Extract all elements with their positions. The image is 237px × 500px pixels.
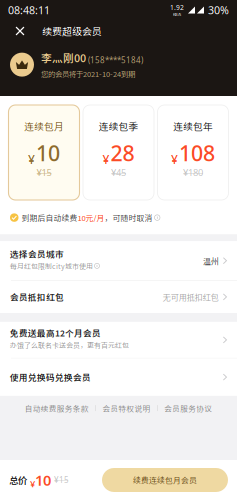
staticText: 08:48:11 (8, 3, 50, 17)
staticText: ，可随时取消 (104, 212, 152, 223)
button[interactable]: 连续包月 (8, 105, 79, 200)
staticText: KB/S (173, 12, 181, 17)
staticText: 免费送最高12个月会员 (10, 327, 101, 339)
staticText: 总价 (9, 473, 27, 487)
staticText: 到期后自动续费 (21, 212, 77, 223)
staticText: 10 (36, 139, 60, 167)
staticText: 选择会员城市 (10, 247, 64, 260)
staticText: ¥15 (54, 475, 69, 485)
staticText: 1.92 (170, 3, 184, 12)
staticText: 10元/月 (77, 212, 104, 223)
staticText: 续费超级会员 (42, 24, 102, 38)
button[interactable]: 连续包季 (83, 105, 154, 200)
button[interactable]: 会员特权说明 (102, 403, 150, 414)
staticText: 连续包月 (24, 119, 64, 133)
staticText: ¥ (102, 151, 109, 167)
button[interactable]: 续费连续包月会员 (102, 468, 228, 492)
button[interactable]: 选择会员城市 (0, 241, 237, 280)
staticText: 李灬刚00 (41, 50, 86, 65)
staticText: 您的会员将于2021-10-24到期 (41, 68, 135, 79)
button[interactable]: 自动续费服务条款 (25, 403, 89, 414)
staticText: 无可用抵扣红包 (163, 291, 219, 303)
staticText: 108 (179, 139, 215, 167)
staticText: ¥ (30, 477, 35, 490)
button[interactable]: Close (8, 20, 32, 42)
button[interactable]: 免费送最高12个月会员 (0, 322, 237, 358)
staticText: 会员特权说明 (102, 403, 150, 414)
staticText: 10 (35, 470, 51, 490)
button[interactable]: 会员服务协议 (164, 403, 212, 414)
staticText: 会员抵扣红包 (10, 291, 64, 303)
button[interactable]: 连续包年 (157, 105, 228, 200)
staticText: 每月红包限制city城市使用 (10, 261, 93, 271)
staticText: ¥15 (36, 166, 51, 179)
staticText: 办饿了么联名卡送会员，更有百元红包 (10, 340, 129, 350)
button[interactable]: 使用兑换码兑换会员 (0, 359, 237, 396)
staticText: 连续包年 (173, 119, 213, 133)
staticText: 连续包季 (98, 119, 138, 133)
staticText: 28 (110, 139, 134, 167)
staticText: 会员服务协议 (164, 403, 212, 414)
staticText: ¥ (28, 151, 35, 167)
staticText: 自动续费服务条款 (25, 403, 89, 414)
button[interactable]: 会员抵扣红包 (0, 281, 237, 313)
staticText: 30% (208, 3, 229, 17)
staticText: 使用兑换码兑换会员 (10, 371, 91, 383)
staticText: (158****5184) (88, 55, 143, 65)
staticText: ¥45 (111, 166, 126, 179)
staticText: 续费连续包月会员 (133, 474, 197, 486)
staticText: ¥180 (183, 166, 203, 179)
staticText: 温州 (203, 255, 219, 267)
staticText: ¥ (171, 151, 178, 167)
